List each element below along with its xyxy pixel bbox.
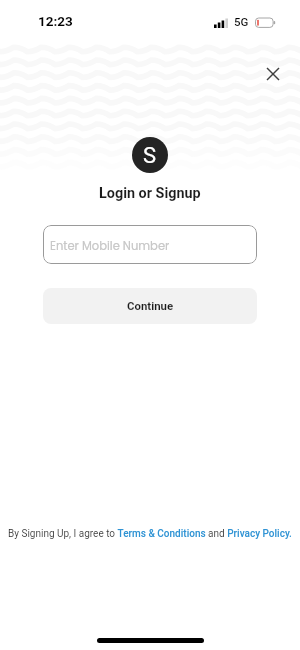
button[interactable]: Enter Mobile Number <box>43 225 257 264</box>
button[interactable]: Continue <box>43 288 257 324</box>
staticText: Continue <box>127 299 174 312</box>
button[interactable]: By Signing Up, I agree to Terms & Condit… <box>8 528 292 540</box>
staticText: Enter Mobile Number <box>50 238 170 254</box>
staticText: 5G <box>234 15 249 28</box>
staticText: 12:23 <box>38 13 73 29</box>
staticText: Login or Signup <box>99 185 201 202</box>
staticText: S <box>143 143 157 169</box>
button[interactable]: Close <box>258 59 287 88</box>
button[interactable]: App logo <box>132 137 168 173</box>
